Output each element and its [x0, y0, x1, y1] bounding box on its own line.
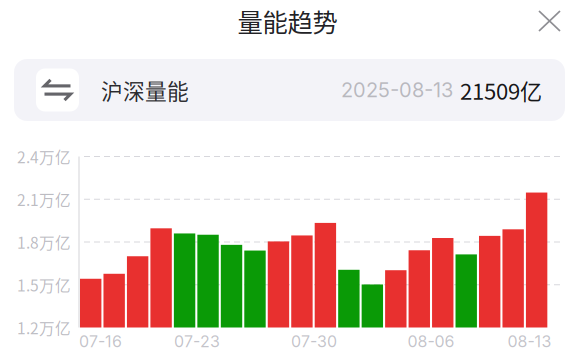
button[interactable]: Close [527, 0, 572, 43]
button[interactable]: 沪深量能 [14, 59, 565, 121]
staticText: 量能趋势 [237, 3, 337, 39]
staticText: 1.5万亿 [17, 273, 71, 296]
staticText: 1.8万亿 [17, 231, 71, 253]
staticText: 2.4万亿 [17, 145, 71, 168]
staticText: 沪深量能 [101, 74, 189, 106]
staticText: 08-06 [407, 332, 454, 351]
staticText: 1.2万亿 [17, 316, 71, 339]
staticText: 21509亿 [460, 74, 542, 106]
staticText: 2025-08-13 [341, 78, 453, 102]
staticText: 07-16 [79, 332, 122, 351]
staticText: 07-23 [174, 332, 220, 351]
staticText: 2.1万亿 [17, 188, 71, 211]
staticText: 07-30 [291, 332, 337, 351]
staticText: 08-13 [507, 332, 551, 351]
